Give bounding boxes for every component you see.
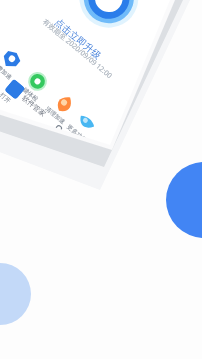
button[interactable]: 免费加速	[0, 42, 29, 83]
staticText: 有效期至 2020/09/09 12:00	[38, 15, 116, 83]
staticText: 打开	[0, 91, 12, 104]
button[interactable]: 软件管家	[4, 78, 64, 133]
button[interactable]: 点击立即升级	[45, 10, 111, 67]
staticText: 点击立即升级	[45, 10, 111, 67]
staticText: 免费加速	[0, 60, 13, 81]
staticText: 更多功能	[66, 123, 88, 143]
button[interactable]: 我的	[43, 122, 66, 145]
button[interactable]: 更多功能	[63, 105, 104, 146]
button[interactable]: 一键体检	[14, 64, 55, 105]
staticText: 软件管家	[20, 93, 48, 119]
button[interactable]: 打开	[0, 91, 12, 104]
staticText: 一键体检	[17, 82, 40, 103]
staticText: 清理加速	[44, 105, 67, 125]
button[interactable]: 清理加速	[41, 87, 82, 127]
